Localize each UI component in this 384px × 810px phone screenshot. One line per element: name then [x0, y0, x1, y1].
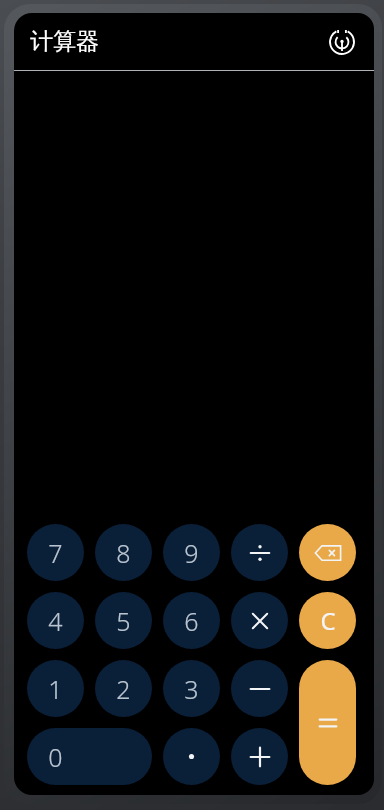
staticText: 6 — [184, 604, 199, 638]
button[interactable]: 0 — [27, 728, 152, 785]
button[interactable]: 7 — [27, 524, 84, 581]
staticText: 1 — [48, 672, 63, 706]
button[interactable]: Backspace — [299, 524, 356, 581]
button[interactable]: C — [299, 592, 356, 649]
button[interactable]: 5 — [95, 592, 152, 649]
button[interactable] — [231, 728, 288, 785]
button[interactable]: Unit converter — [322, 22, 362, 62]
staticText: C — [320, 604, 336, 637]
staticText: 3 — [184, 672, 199, 706]
button[interactable] — [299, 660, 356, 785]
button[interactable] — [231, 660, 288, 717]
button[interactable]: 8 — [95, 524, 152, 581]
button[interactable] — [231, 592, 288, 649]
button[interactable]: 3 — [163, 660, 220, 717]
button[interactable]: 1 — [27, 660, 84, 717]
button[interactable]: 6 — [163, 592, 220, 649]
button[interactable]: 2 — [95, 660, 152, 717]
staticText: 8 — [116, 536, 131, 570]
button[interactable] — [231, 524, 288, 581]
staticText: 0 — [48, 740, 63, 774]
staticText: 4 — [48, 604, 63, 638]
staticText: 9 — [184, 536, 199, 570]
button[interactable]: 4 — [27, 592, 84, 649]
button[interactable]: 9 — [163, 524, 220, 581]
button[interactable] — [163, 728, 220, 785]
staticText: 7 — [48, 536, 63, 570]
staticText: 计算器 — [30, 27, 99, 56]
staticText: 2 — [116, 672, 131, 706]
staticText: 5 — [116, 604, 131, 638]
